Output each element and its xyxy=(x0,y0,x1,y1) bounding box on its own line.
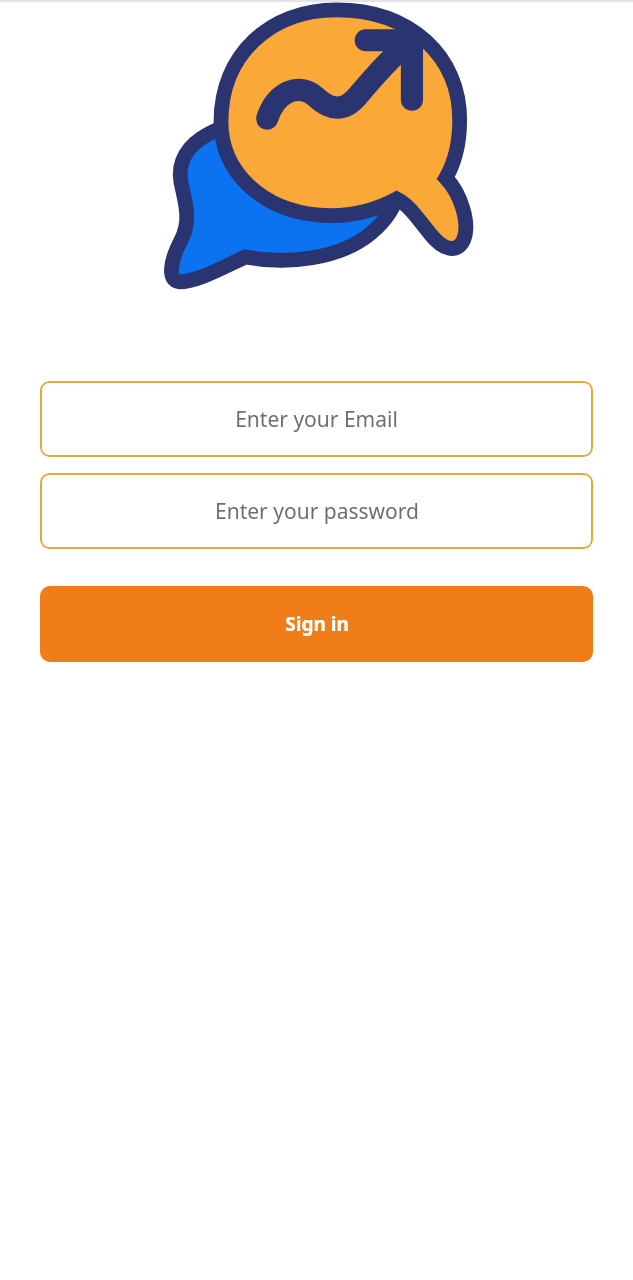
button[interactable]: Enter your Email xyxy=(40,381,593,457)
staticText: Enter your password xyxy=(215,497,419,526)
button[interactable]: Enter your password xyxy=(40,473,593,549)
staticText: Enter your Email xyxy=(235,405,398,434)
staticText: Sign in xyxy=(285,611,349,637)
other: Chat growth logo xyxy=(164,4,472,294)
button[interactable]: Sign in xyxy=(40,586,593,662)
